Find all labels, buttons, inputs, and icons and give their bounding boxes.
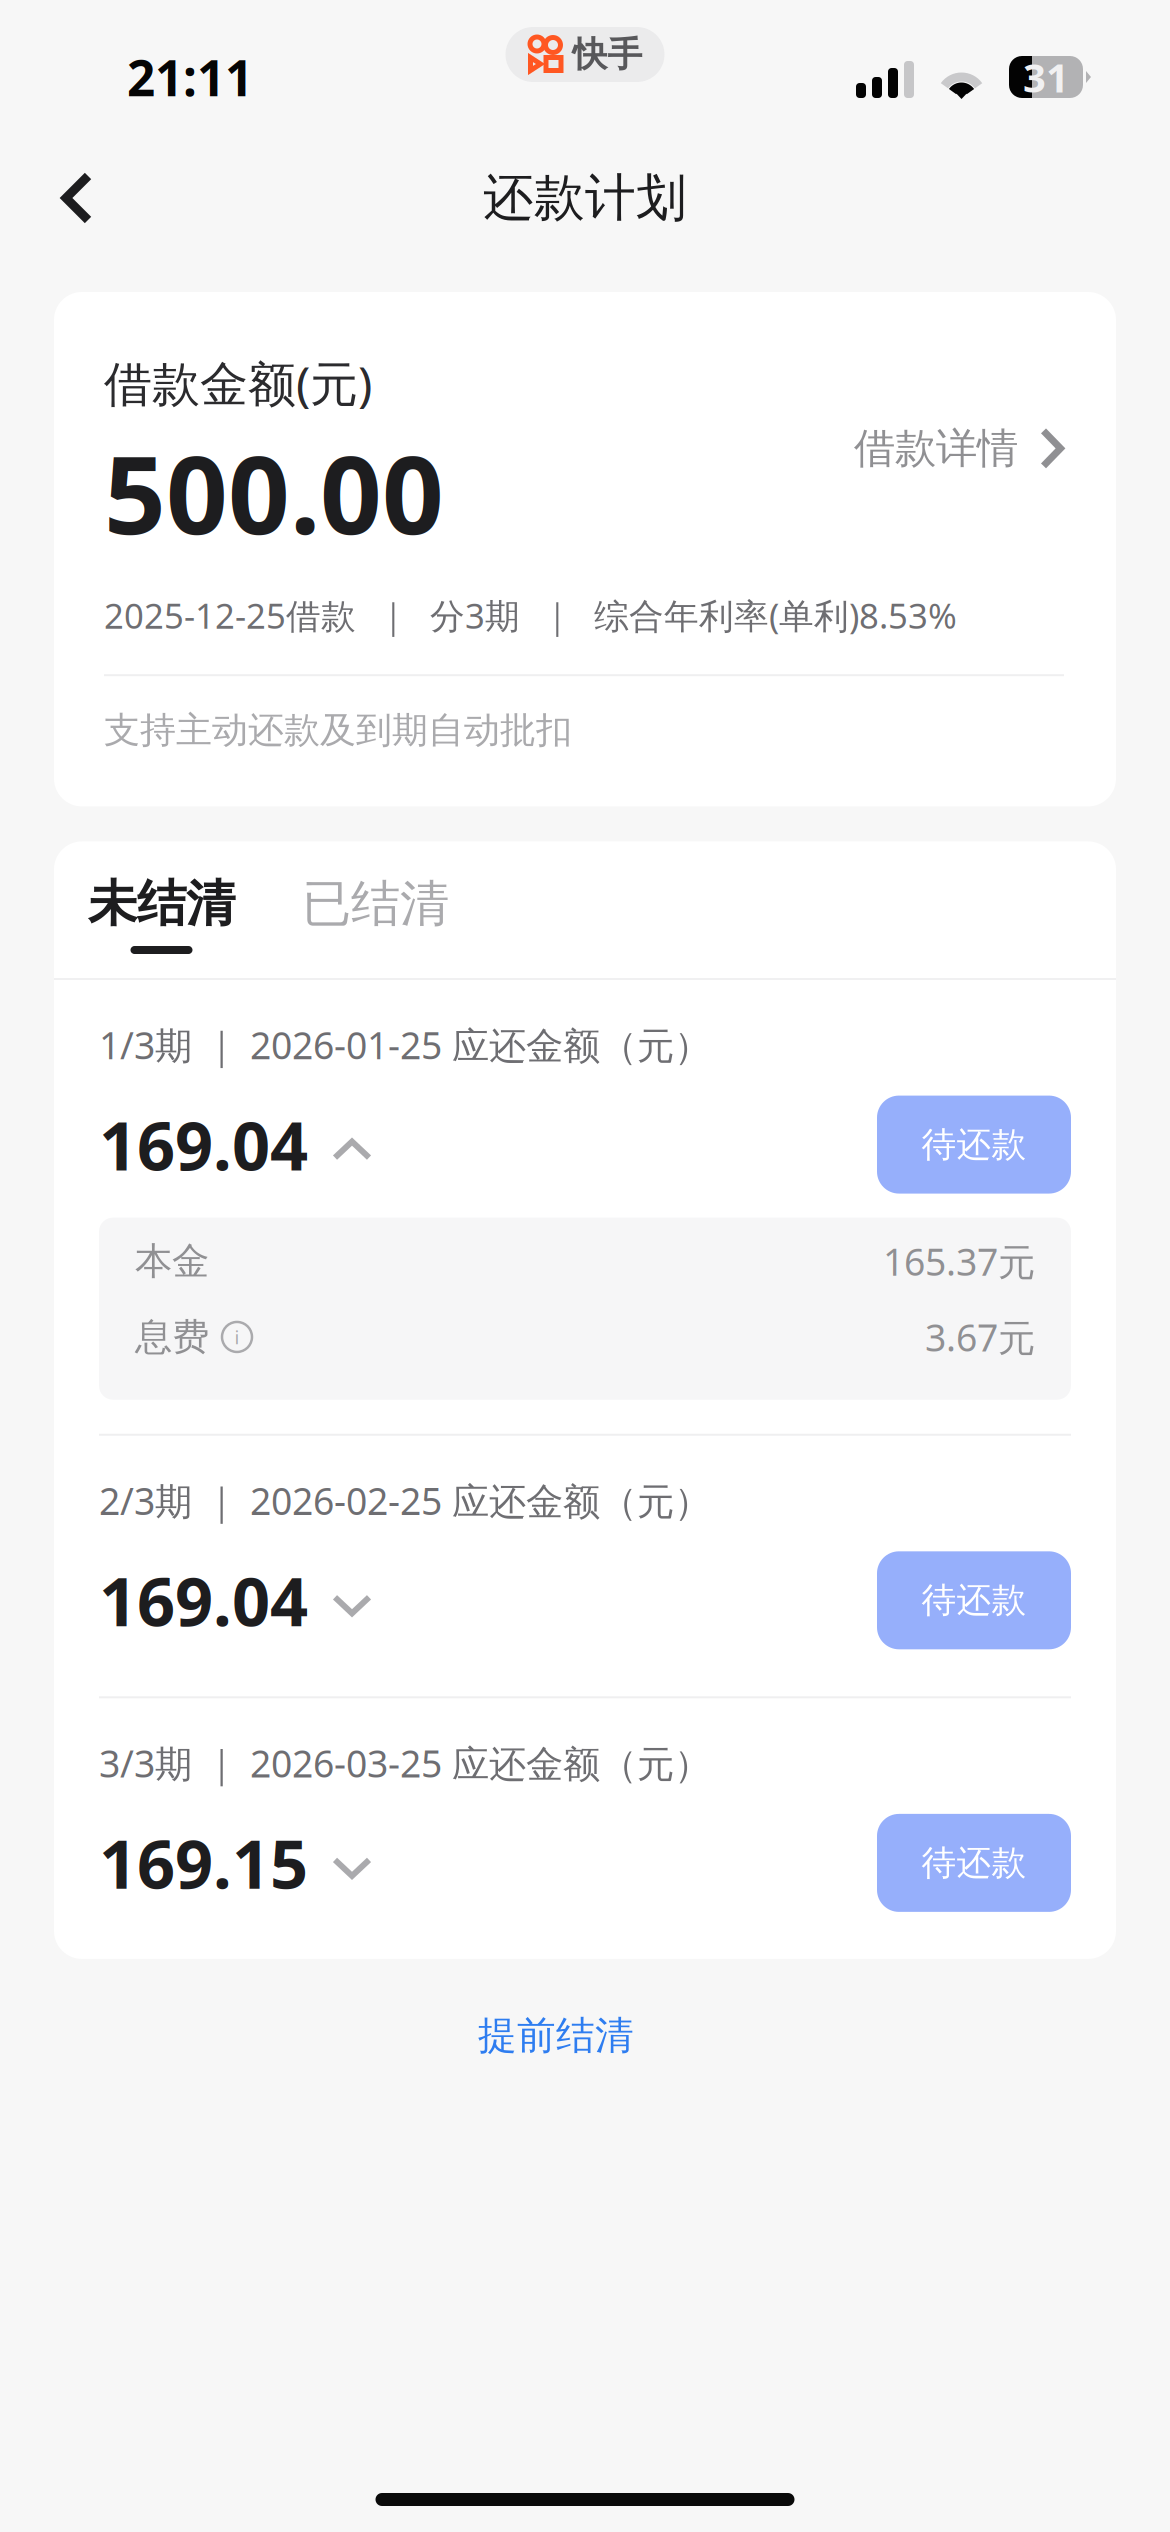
button[interactable]: 提前结清 — [438, 1992, 674, 2079]
staticText: 还款计划 — [483, 167, 687, 229]
staticText: 1/3期 ｜ 2026-01-25 应还金额（元） — [99, 1020, 711, 1070]
staticText: 支持主动还款及到期自动批扣 — [104, 708, 572, 752]
button[interactable]: 已结清 — [302, 873, 449, 954]
staticText: 已结清 — [302, 873, 449, 934]
staticText: 21:11 — [127, 44, 253, 110]
staticText: 165.37元 — [883, 1237, 1035, 1286]
button[interactable]: Back — [29, 150, 125, 246]
staticText: 借款金额(元) — [104, 351, 372, 415]
staticText: 借款详情 — [854, 423, 1018, 474]
staticText: 息费 — [135, 1314, 209, 1360]
staticText: 快手 — [572, 33, 642, 76]
button[interactable]: 借款详情 — [854, 351, 1064, 474]
staticText: 本金 — [135, 1238, 209, 1284]
staticText: 31 — [1023, 50, 1069, 103]
staticText: 提前结清 — [478, 2012, 634, 2059]
staticText: 3/3期 ｜ 2026-03-25 应还金额（元） — [99, 1738, 711, 1788]
button[interactable]: 未结清 — [88, 873, 235, 954]
button[interactable]: 待还款 — [877, 1096, 1071, 1194]
staticText: 169.04 — [99, 1556, 308, 1645]
staticText: 2/3期 ｜ 2026-02-25 应还金额（元） — [99, 1476, 711, 1525]
staticText: 3.67元 — [925, 1312, 1035, 1362]
staticText: 169.04 — [99, 1100, 308, 1189]
staticText: 2025-12-25借款 ｜ 分3期 ｜ 综合年利率(单利)8.53% — [104, 592, 957, 638]
staticText: 待还款 — [921, 1842, 1026, 1884]
staticText: 待还款 — [921, 1123, 1026, 1166]
staticText: 未结清 — [88, 873, 235, 934]
button[interactable]: 待还款 — [877, 1551, 1071, 1649]
button[interactable]: 待还款 — [877, 1814, 1071, 1912]
staticText: i — [234, 1325, 239, 1349]
staticText: 500.00 — [104, 421, 444, 564]
staticText: 169.15 — [99, 1819, 308, 1907]
staticText: 待还款 — [921, 1579, 1026, 1622]
